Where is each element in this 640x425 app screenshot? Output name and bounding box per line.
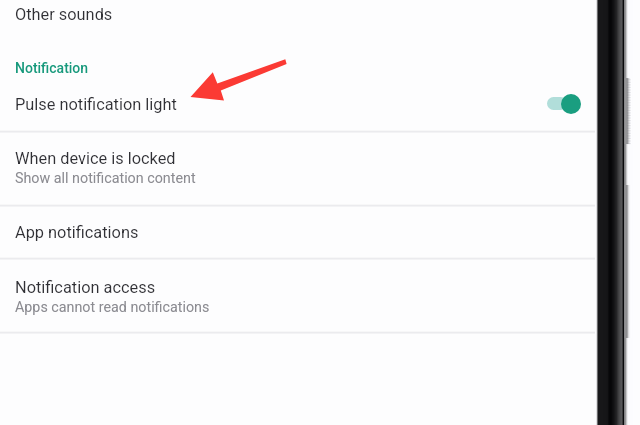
staticText: App notifications [15,223,139,242]
staticText: When device is locked [15,149,176,168]
staticText: Pulse notification light [15,95,177,114]
staticText: Other sounds [15,5,113,24]
button[interactable]: Pulse notification light [0,84,597,131]
staticText: Show all notification content [15,170,196,187]
button[interactable]: When device is locked [0,132,597,205]
staticText: Apps cannot read notifications [15,299,210,316]
button[interactable]: Pulse notification light toggle [547,93,581,115]
staticText: Notification access [15,278,156,297]
button[interactable]: Notification access [0,259,597,332]
button[interactable]: Other sounds [0,0,597,30]
button[interactable]: App notifications [0,206,597,258]
staticText: Notification [15,60,89,76]
